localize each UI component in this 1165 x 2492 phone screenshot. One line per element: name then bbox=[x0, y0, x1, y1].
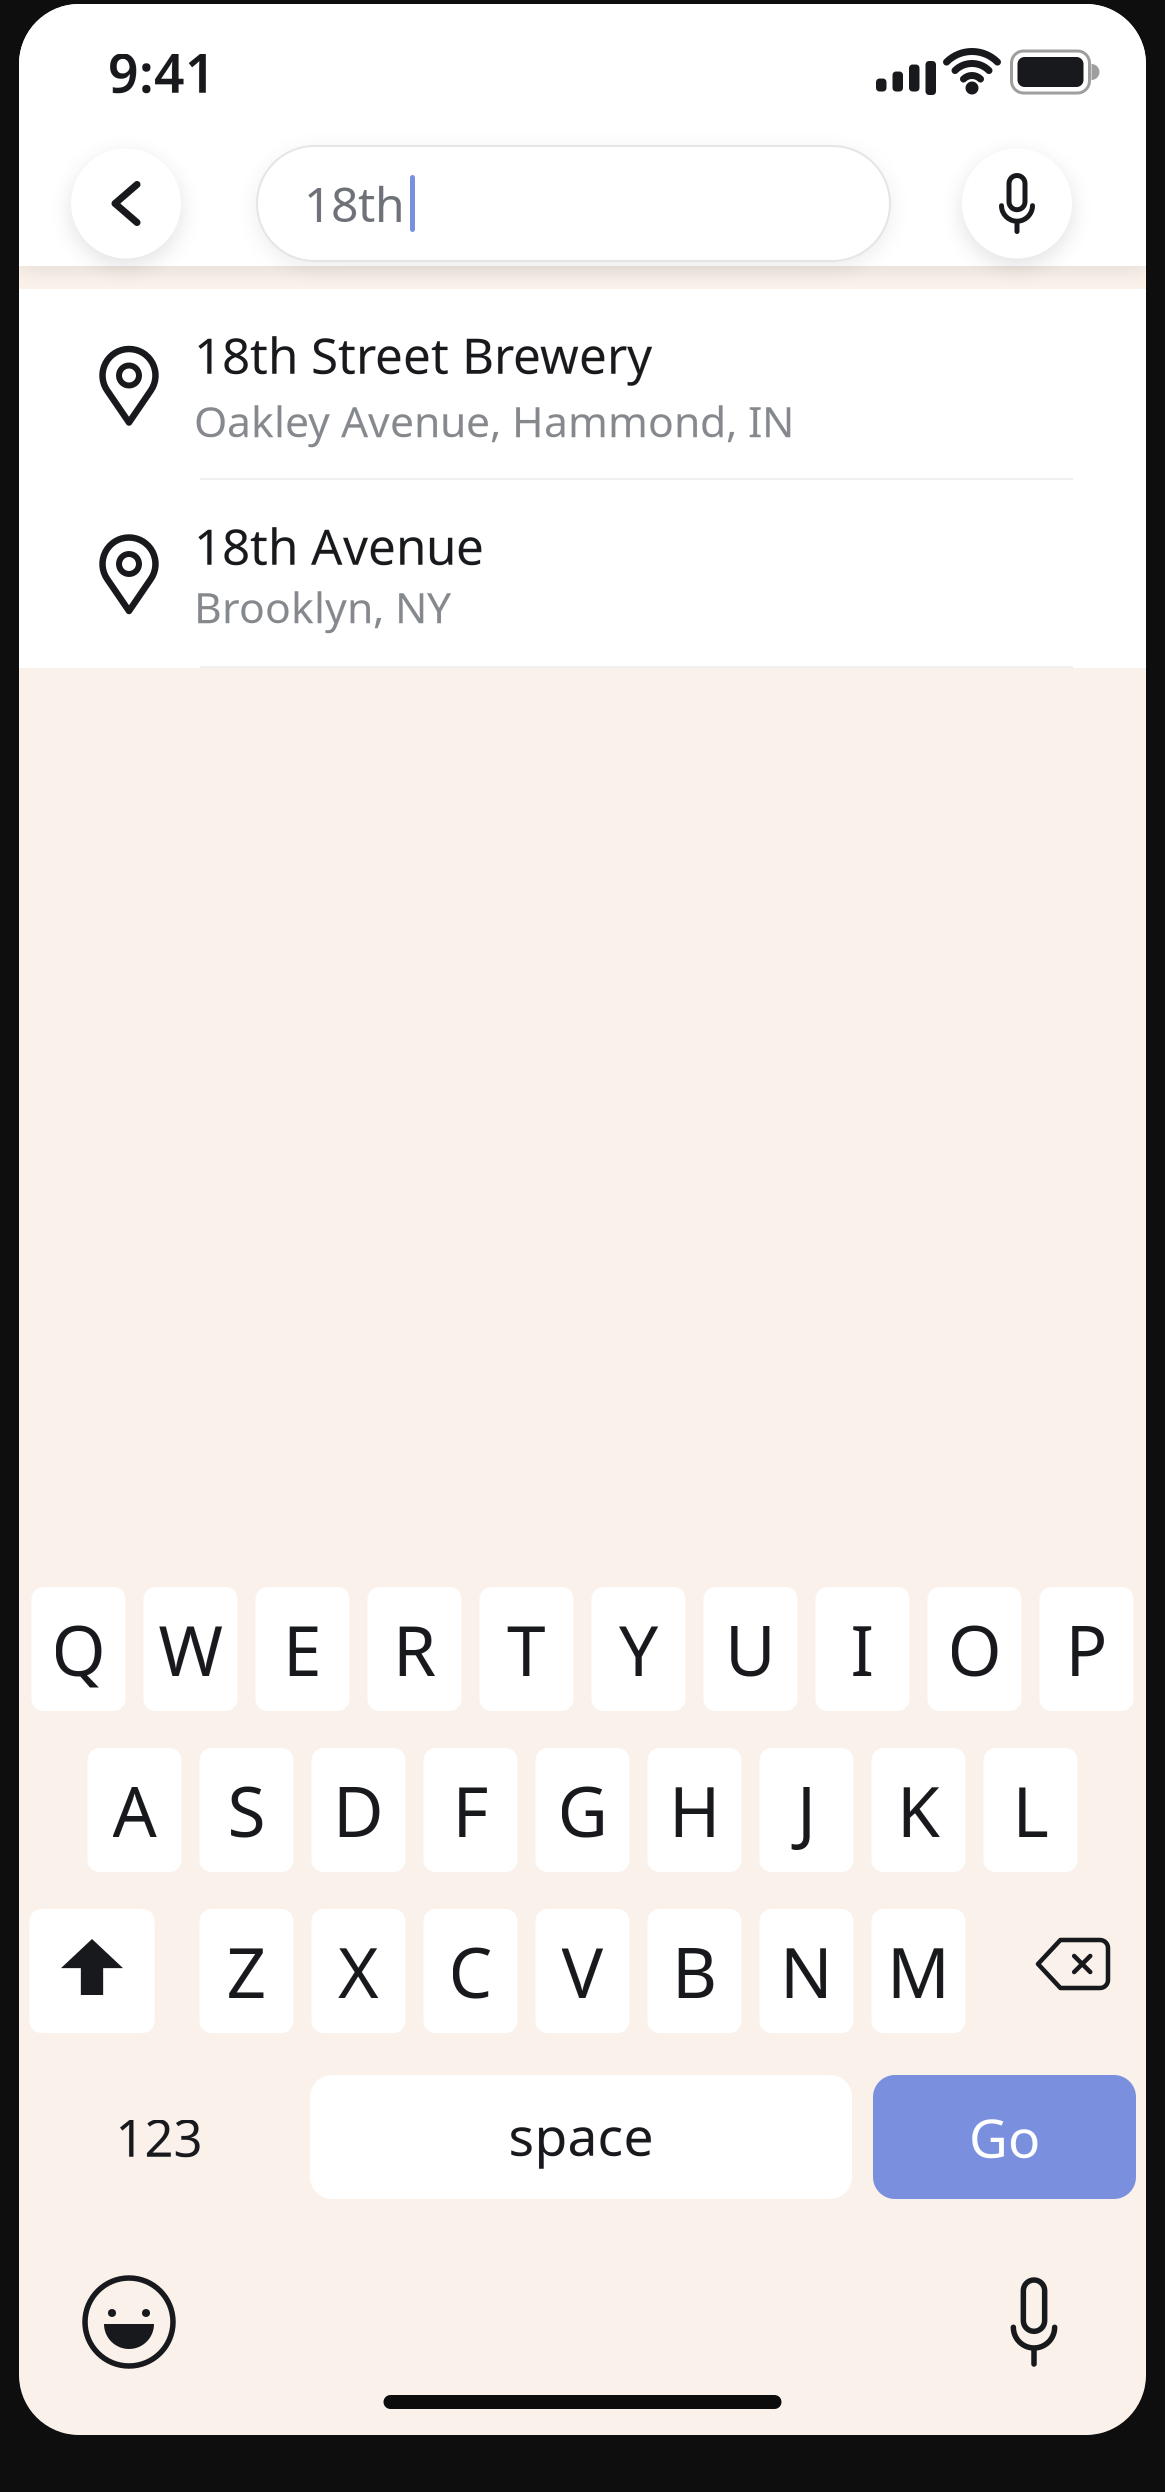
staticText: R bbox=[393, 1603, 436, 1695]
staticText: H bbox=[669, 1764, 720, 1856]
button[interactable]: X bbox=[311, 1909, 405, 2033]
staticText: Go bbox=[969, 2102, 1040, 2172]
staticText: D bbox=[333, 1764, 384, 1856]
staticText: N bbox=[780, 1925, 833, 2017]
staticText: Q bbox=[51, 1603, 105, 1695]
button[interactable]: P bbox=[1039, 1587, 1133, 1711]
staticText: 123 bbox=[115, 2103, 202, 2171]
button[interactable]: space bbox=[310, 2075, 852, 2199]
staticText: G bbox=[557, 1764, 607, 1856]
button[interactable]: O bbox=[927, 1587, 1021, 1711]
staticText: Brooklyn, NY bbox=[194, 578, 451, 635]
button[interactable]: D bbox=[311, 1748, 405, 1872]
button[interactable]: M bbox=[871, 1909, 965, 2033]
staticText: T bbox=[507, 1603, 546, 1695]
button[interactable]: Shift bbox=[29, 1909, 154, 2033]
button[interactable]: B bbox=[647, 1909, 741, 2033]
button[interactable]: Y bbox=[591, 1587, 685, 1711]
button[interactable]: W bbox=[143, 1587, 237, 1711]
button[interactable]: S bbox=[199, 1748, 293, 1872]
button[interactable]: Search bbox=[257, 146, 890, 261]
staticText: C bbox=[448, 1925, 492, 2017]
button[interactable]: F bbox=[423, 1748, 517, 1872]
button[interactable]: I bbox=[815, 1587, 909, 1711]
button[interactable]: Dictation bbox=[994, 2278, 1074, 2366]
staticText: Z bbox=[226, 1925, 266, 2017]
button[interactable]: E bbox=[255, 1587, 349, 1711]
button[interactable]: V bbox=[535, 1909, 629, 2033]
staticText: A bbox=[112, 1764, 156, 1856]
button[interactable]: T bbox=[479, 1587, 573, 1711]
button[interactable]: A bbox=[87, 1748, 181, 1872]
button[interactable]: Voice search bbox=[962, 148, 1072, 258]
staticText: 18th Avenue bbox=[194, 513, 484, 578]
staticText: S bbox=[227, 1764, 265, 1856]
staticText: L bbox=[1012, 1764, 1048, 1856]
button[interactable]: 123 bbox=[29, 2075, 289, 2199]
button[interactable]: Z bbox=[199, 1909, 293, 2033]
staticText: I bbox=[850, 1603, 874, 1695]
staticText: 9:41 bbox=[108, 37, 216, 107]
button[interactable]: Go bbox=[873, 2075, 1136, 2199]
staticText: E bbox=[283, 1603, 322, 1695]
staticText: K bbox=[897, 1764, 940, 1856]
button[interactable]: Emoji bbox=[85, 2278, 173, 2366]
staticText: Oakley Avenue, Hammond, IN bbox=[194, 392, 794, 449]
staticText: 18th Street Brewery bbox=[194, 322, 652, 387]
staticText: O bbox=[947, 1603, 1001, 1695]
staticText: F bbox=[452, 1764, 488, 1856]
button[interactable]: R bbox=[367, 1587, 461, 1711]
staticText: B bbox=[672, 1925, 717, 2017]
staticText: Y bbox=[619, 1603, 658, 1695]
staticText: J bbox=[797, 1764, 816, 1856]
button[interactable]: Delete bbox=[1010, 1909, 1135, 2033]
staticText: X bbox=[338, 1925, 379, 2017]
button[interactable]: Back bbox=[71, 148, 181, 258]
button[interactable]: C bbox=[423, 1909, 517, 2033]
button[interactable]: N bbox=[759, 1909, 853, 2033]
button[interactable]: 18th Street Brewery bbox=[19, 289, 1146, 478]
staticText: space bbox=[508, 2100, 653, 2170]
staticText: P bbox=[1065, 1603, 1107, 1695]
button[interactable]: K bbox=[871, 1748, 965, 1872]
staticText: M bbox=[887, 1925, 950, 2017]
button[interactable]: 18th Avenue bbox=[19, 480, 1146, 666]
button[interactable]: H bbox=[647, 1748, 741, 1872]
button[interactable]: J bbox=[759, 1748, 853, 1872]
button[interactable]: G bbox=[535, 1748, 629, 1872]
staticText: W bbox=[158, 1603, 222, 1695]
staticText: U bbox=[725, 1603, 776, 1695]
staticText: V bbox=[561, 1925, 603, 2017]
button[interactable]: L bbox=[983, 1748, 1077, 1872]
button[interactable]: U bbox=[703, 1587, 797, 1711]
button[interactable]: Q bbox=[31, 1587, 125, 1711]
staticText: 18th bbox=[304, 172, 405, 235]
